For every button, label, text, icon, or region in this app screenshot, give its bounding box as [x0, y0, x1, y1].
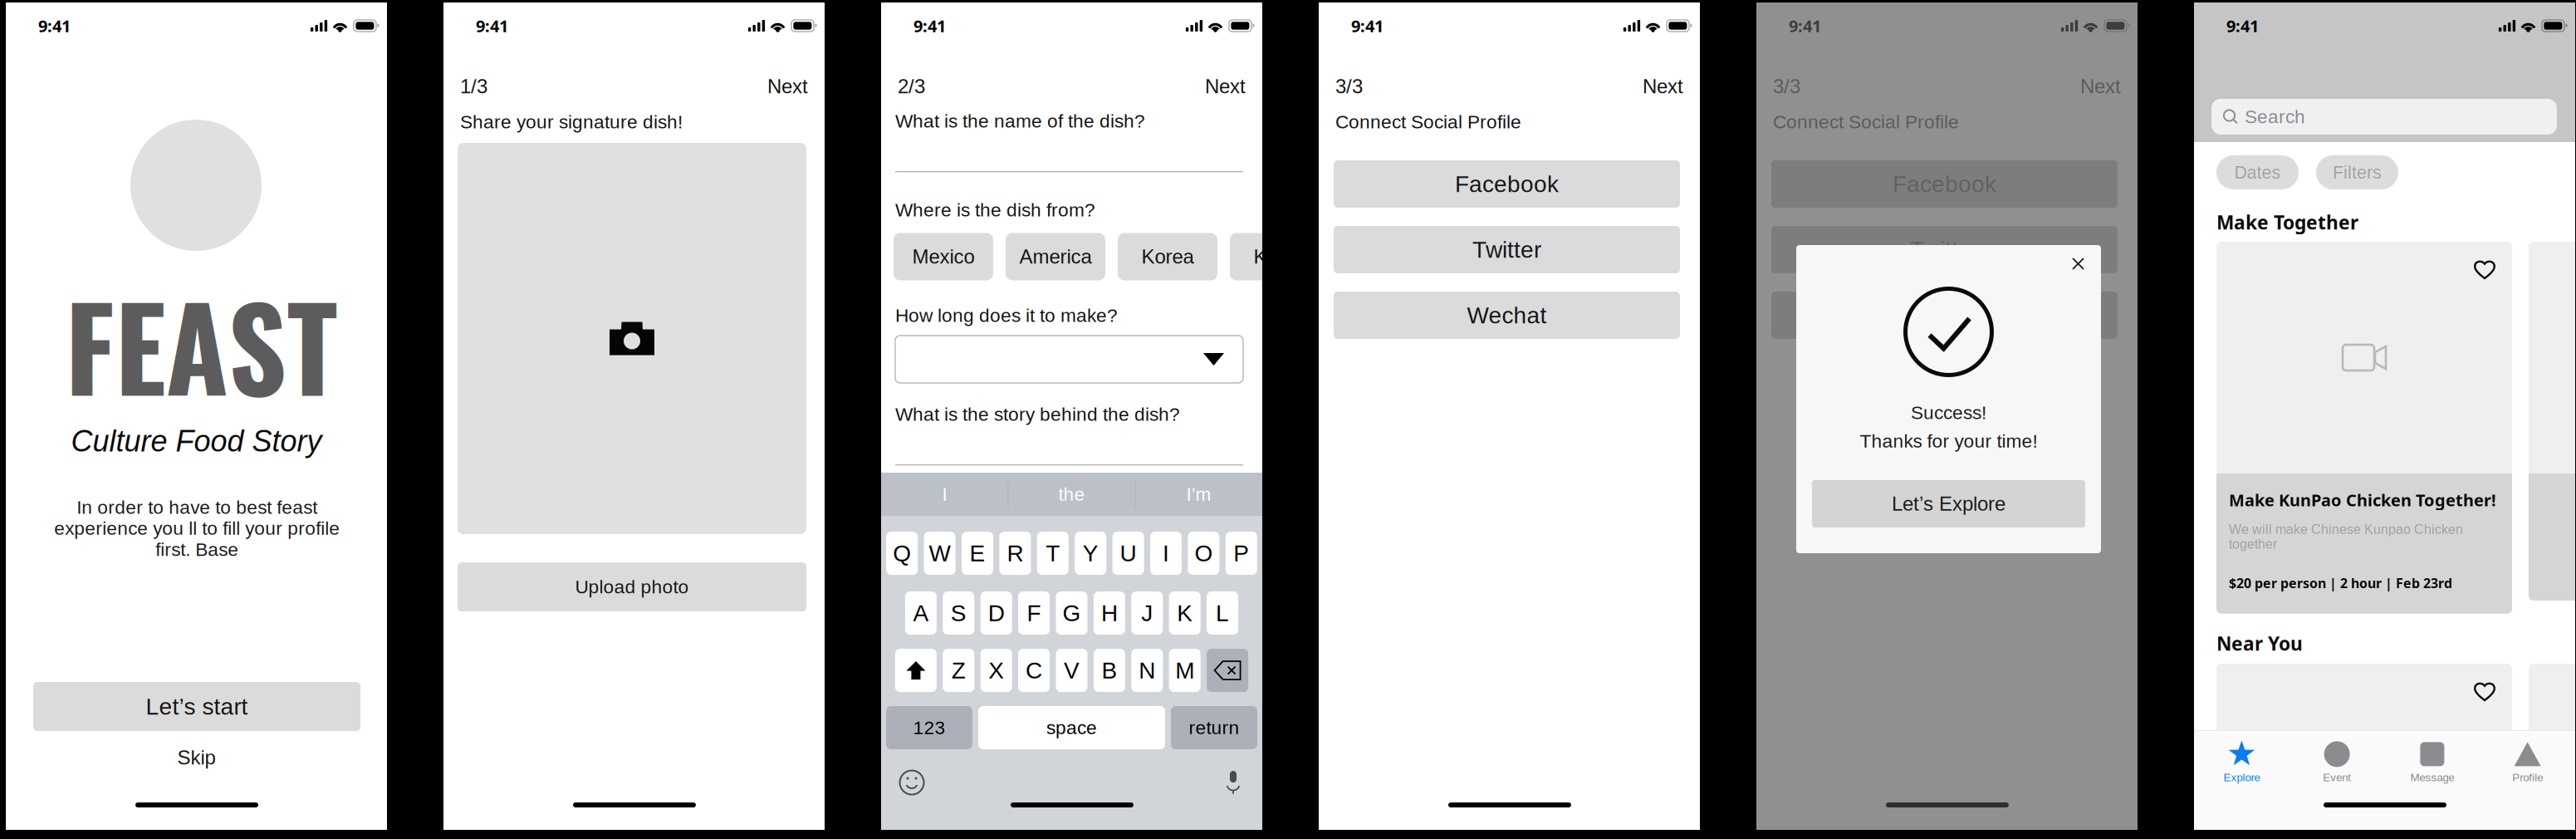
button[interactable]: B [1094, 649, 1125, 692]
button[interactable]: X [980, 649, 1012, 692]
button[interactable]: Let’s start [33, 682, 360, 731]
button[interactable]: O [1188, 532, 1219, 575]
staticText: 9:41 [2226, 14, 2259, 37]
staticText: Z [952, 657, 966, 683]
button[interactable]: Message [2385, 731, 2480, 782]
button[interactable]: Close [2065, 251, 2091, 277]
staticText: 3/3 [1335, 75, 1363, 98]
button[interactable]: U [1112, 532, 1144, 575]
button[interactable]: W [924, 532, 955, 575]
button[interactable]: R [999, 532, 1031, 575]
button[interactable]: Q [886, 532, 918, 575]
staticText: H [1101, 600, 1118, 626]
staticText: Wechat [1467, 302, 1547, 328]
staticText: Dates [2234, 162, 2281, 182]
staticText: Q [893, 540, 911, 566]
staticText: X [988, 657, 1004, 683]
button[interactable]: Twitter [1334, 226, 1680, 273]
staticText: Let’s Explore [1892, 493, 2005, 515]
button[interactable]: D [980, 591, 1012, 635]
button[interactable]: K [1169, 591, 1201, 635]
button[interactable]: T [1037, 532, 1069, 575]
button[interactable]: Korea [1118, 233, 1217, 280]
button[interactable]: 123 [886, 706, 972, 749]
staticText: 3/3 [1773, 75, 1800, 98]
button[interactable]: Wechat [1334, 292, 1680, 339]
button[interactable]: Next [767, 75, 808, 98]
button[interactable]: G [1056, 591, 1087, 635]
staticText: Explore [2223, 771, 2260, 784]
button[interactable]: V [1056, 649, 1087, 692]
button[interactable]: Profile [2480, 731, 2575, 782]
button[interactable]: Dates [2216, 155, 2299, 189]
button[interactable]: Skip [6, 745, 387, 770]
button[interactable]: Next [2080, 75, 2121, 98]
button[interactable]: Facebook [1771, 160, 2118, 208]
button[interactable]: M [1169, 649, 1201, 692]
button[interactable]: Y [1075, 532, 1106, 575]
button[interactable]: Z [943, 649, 974, 692]
button[interactable]: Shift [895, 649, 937, 692]
button[interactable]: Favorite [2474, 664, 2512, 701]
button[interactable]: Next [1643, 75, 1683, 98]
staticText: 9:41 [1789, 14, 1821, 37]
staticText: What is the story behind the dish? [895, 404, 1180, 425]
button[interactable]: America [1006, 233, 1105, 280]
button[interactable]: Twitter [1771, 226, 2118, 273]
staticText: Facebook [1455, 171, 1559, 197]
staticText: B [1101, 657, 1117, 683]
staticText: L [1216, 600, 1229, 626]
staticText: Next [2080, 75, 2121, 98]
button[interactable]: Next [1205, 75, 1246, 98]
staticText: What is the name of the dish? [895, 110, 1145, 131]
button[interactable]: N [1131, 649, 1163, 692]
button[interactable]: Wechat [1771, 292, 2118, 339]
button[interactable]: Emoji [899, 770, 924, 795]
button[interactable]: Filters [2316, 155, 2398, 189]
button[interactable]: F [1018, 591, 1050, 635]
button[interactable]: return [1171, 706, 1257, 749]
staticText: Message [2410, 771, 2454, 784]
button[interactable]: C [1018, 649, 1050, 692]
button[interactable]: space [978, 706, 1165, 749]
staticText: Make Together [2216, 209, 2358, 235]
button[interactable]: P [1226, 532, 1257, 575]
button[interactable]: E [962, 532, 993, 575]
staticText: O [1194, 540, 1213, 566]
staticText: C [1026, 657, 1042, 683]
staticText: E [970, 540, 985, 566]
staticText: R [1007, 540, 1023, 566]
button[interactable]: Event [2289, 731, 2385, 782]
staticText: Filters [2333, 162, 2382, 182]
staticText: 2/3 [898, 75, 925, 98]
button[interactable]: Let’s Explore [1812, 480, 2085, 527]
button[interactable]: Mexico [894, 233, 993, 280]
staticText: J [1141, 600, 1153, 626]
button[interactable]: Korea [1230, 233, 1330, 280]
button[interactable]: L [1207, 591, 1238, 635]
staticText: Event [2323, 771, 2351, 784]
button[interactable]: I [1150, 532, 1182, 575]
staticText: 9:41 [476, 14, 508, 37]
staticText: Next [1205, 75, 1246, 98]
staticText: F [1027, 600, 1041, 626]
button[interactable]: Dictation [1226, 771, 1241, 794]
staticText: Let’s start [146, 694, 248, 720]
button[interactable]: J [1131, 591, 1163, 635]
button[interactable]: Explore [2194, 731, 2289, 782]
staticText: D [988, 600, 1005, 626]
staticText: Upload photo [575, 576, 689, 597]
button[interactable]: H [1094, 591, 1125, 635]
staticText: Korea [1141, 246, 1194, 268]
staticText: the [1058, 484, 1085, 505]
button[interactable]: Delete [1207, 649, 1248, 692]
button[interactable]: Favorite [2474, 242, 2512, 279]
staticText: Facebook [1893, 171, 1996, 197]
button[interactable]: Facebook [1334, 160, 1680, 208]
button[interactable]: A [905, 591, 937, 635]
staticText: K [1177, 600, 1193, 626]
staticText: space [1046, 717, 1097, 738]
button[interactable]: S [943, 591, 974, 635]
staticText: return [1189, 717, 1239, 738]
button[interactable]: Upload photo [458, 562, 806, 611]
